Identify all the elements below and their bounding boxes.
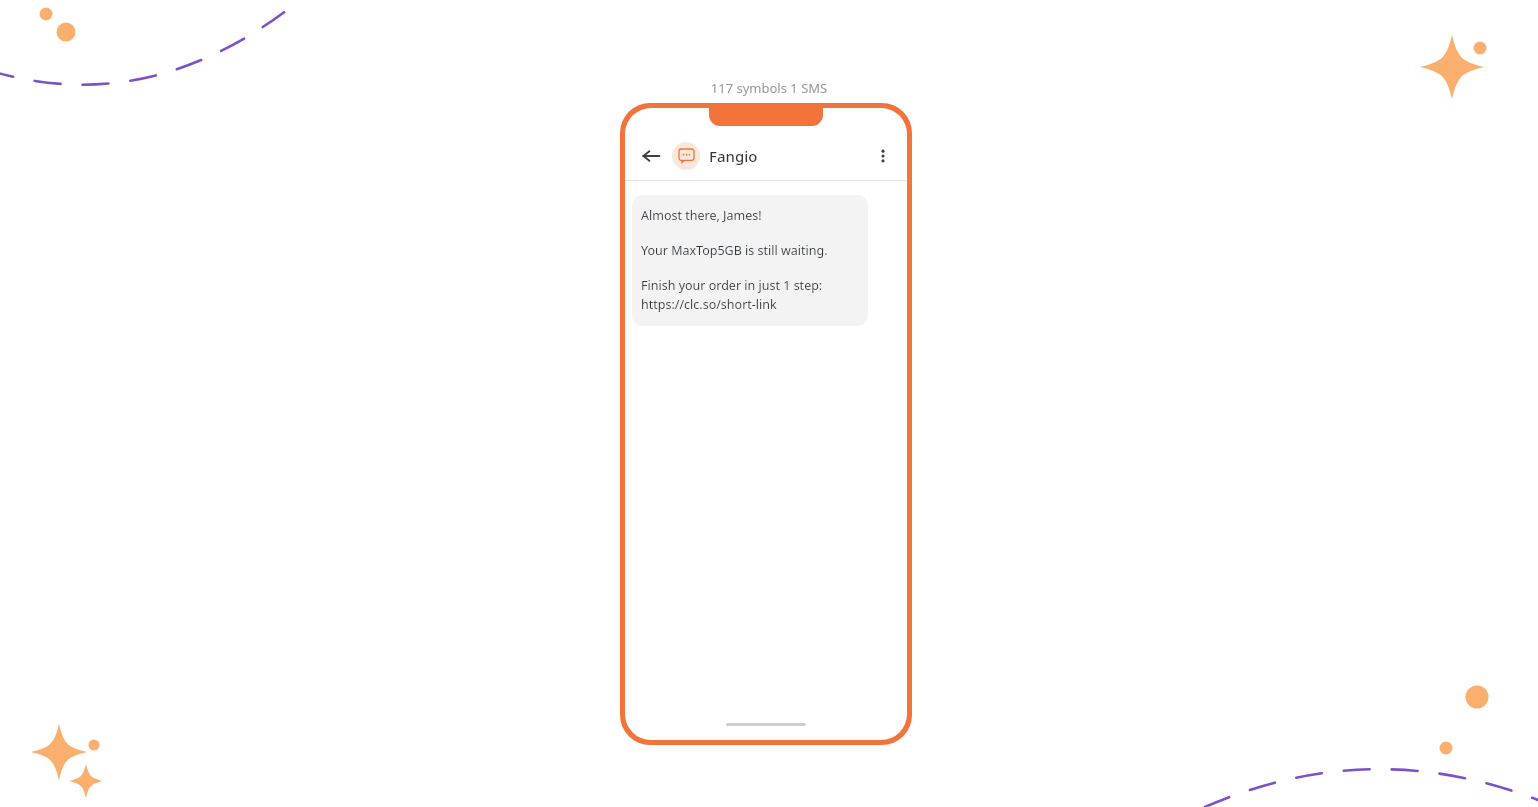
staticText: Fangio bbox=[709, 146, 758, 166]
button[interactable]: Fangio bbox=[672, 142, 758, 170]
staticText: https://clc.so/short-link bbox=[641, 296, 777, 313]
staticText: 117 symbols 1 SMS bbox=[639, 79, 899, 97]
staticText: Almost there, James! bbox=[641, 207, 762, 224]
button[interactable]: Almost there, James! bbox=[632, 195, 868, 326]
button[interactable]: Back bbox=[635, 140, 667, 172]
staticText: Your MaxTop5GB is still waiting. bbox=[641, 242, 828, 259]
button[interactable]: More options bbox=[866, 139, 900, 173]
staticText: Finish your order in just 1 step: bbox=[641, 277, 823, 294]
